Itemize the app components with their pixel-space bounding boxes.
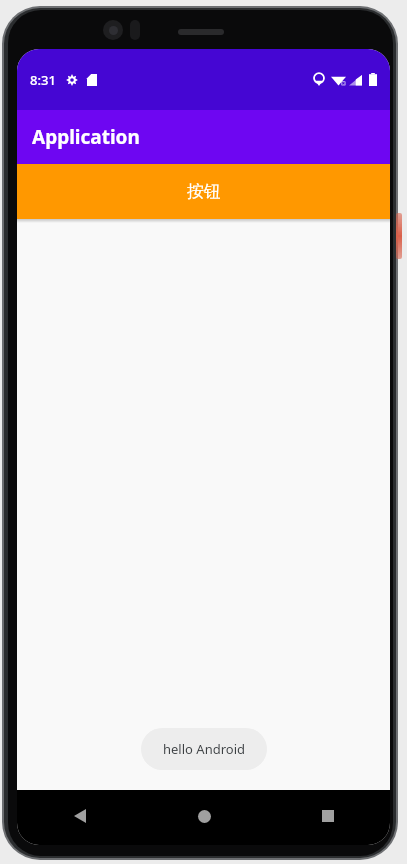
- button[interactable]: Back: [17, 799, 142, 833]
- button[interactable]: Home: [142, 799, 266, 833]
- staticText: 8:31: [30, 71, 56, 89]
- button[interactable]: Recent apps: [266, 799, 390, 833]
- staticText: Application: [32, 124, 140, 150]
- staticText: 按钮: [187, 181, 221, 202]
- button[interactable]: hello Android: [141, 728, 267, 770]
- staticText: hello Android: [163, 740, 245, 758]
- button[interactable]: 按钮: [17, 164, 390, 219]
